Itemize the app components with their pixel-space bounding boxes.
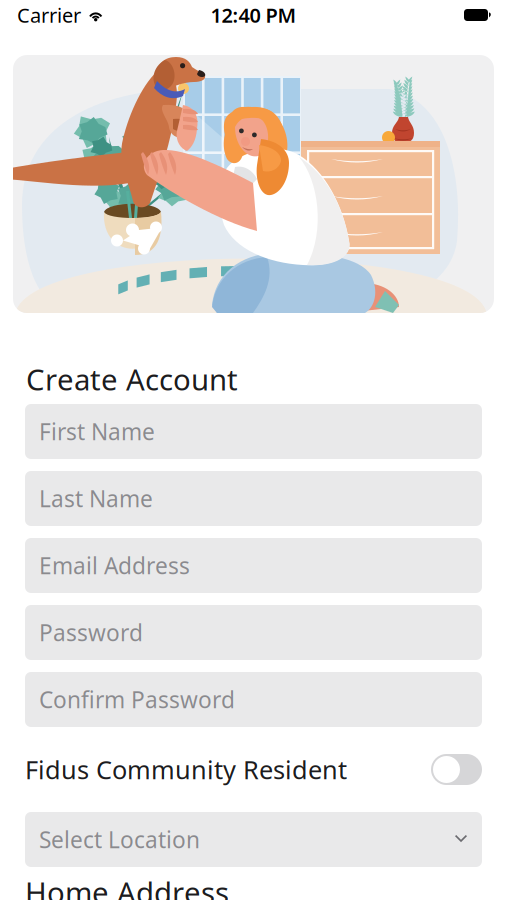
staticText: Home Address xyxy=(25,872,229,900)
button[interactable]: Password xyxy=(25,605,482,660)
button[interactable]: Fidus Community Resident xyxy=(431,754,482,785)
staticText: 12:40 PM xyxy=(210,2,296,28)
staticText: Last Name xyxy=(39,483,153,513)
button[interactable]: Select Location xyxy=(25,812,482,867)
button[interactable]: Last Name xyxy=(25,471,482,526)
staticText: Select Location xyxy=(39,824,200,854)
staticText: Confirm Password xyxy=(39,684,235,714)
staticText: Password xyxy=(39,617,143,647)
staticText: Carrier xyxy=(17,2,81,28)
staticText: Fidus Community Resident xyxy=(25,753,347,786)
button[interactable]: Email Address xyxy=(25,538,482,593)
staticText: Create Account xyxy=(26,359,238,398)
button[interactable]: First Name xyxy=(25,404,482,459)
button[interactable]: Confirm Password xyxy=(25,672,482,727)
staticText: First Name xyxy=(39,416,155,446)
staticText: Email Address xyxy=(39,550,190,580)
